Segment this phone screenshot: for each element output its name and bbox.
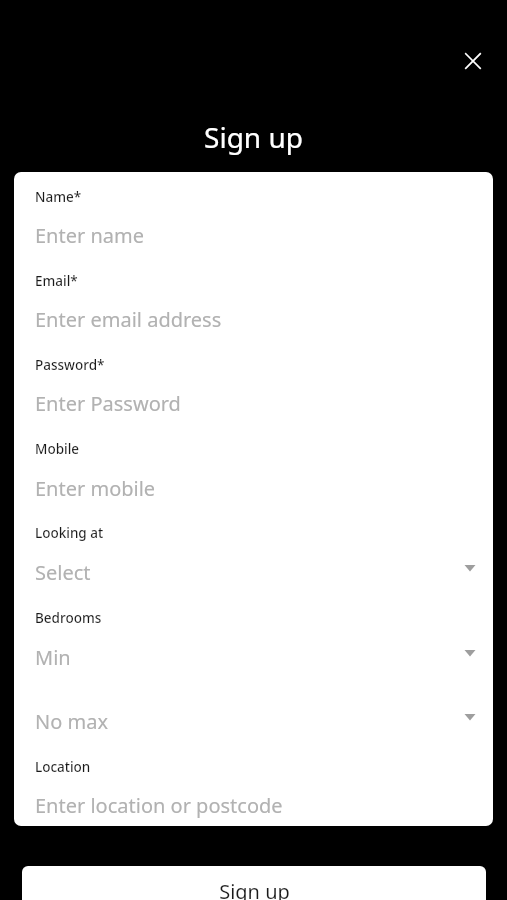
button[interactable] bbox=[14, 212, 493, 258]
staticText: Min bbox=[35, 644, 71, 671]
button[interactable] bbox=[14, 548, 493, 594]
button[interactable]: Sign up bbox=[22, 866, 486, 900]
staticText: Name* bbox=[35, 188, 82, 206]
staticText: Password* bbox=[35, 356, 105, 374]
button[interactable] bbox=[14, 464, 493, 510]
button[interactable] bbox=[14, 296, 493, 342]
button[interactable]: Close bbox=[451, 39, 495, 83]
button[interactable]: Open Looking at options bbox=[452, 550, 488, 586]
button[interactable] bbox=[14, 380, 493, 426]
staticText: Location bbox=[35, 758, 91, 776]
staticText: Sign up bbox=[204, 118, 303, 156]
staticText: Enter name bbox=[35, 222, 144, 249]
button[interactable]: Open maximum bedrooms options bbox=[452, 699, 488, 735]
staticText: Select bbox=[35, 559, 91, 586]
staticText: Looking at bbox=[35, 524, 104, 542]
staticText: No max bbox=[35, 708, 108, 735]
button[interactable]: Open minimum bedrooms options bbox=[452, 635, 488, 671]
staticText: Bedrooms bbox=[35, 609, 102, 627]
staticText: Enter location or postcode bbox=[35, 792, 283, 819]
button[interactable] bbox=[14, 782, 493, 826]
button[interactable] bbox=[14, 698, 493, 744]
button[interactable] bbox=[14, 633, 493, 679]
staticText: Mobile bbox=[35, 440, 80, 458]
staticText: Sign up bbox=[219, 878, 290, 900]
staticText: Enter mobile bbox=[35, 475, 156, 502]
staticText: Enter email address bbox=[35, 306, 222, 333]
staticText: Enter Password bbox=[35, 390, 181, 417]
staticText: Email* bbox=[35, 272, 78, 290]
